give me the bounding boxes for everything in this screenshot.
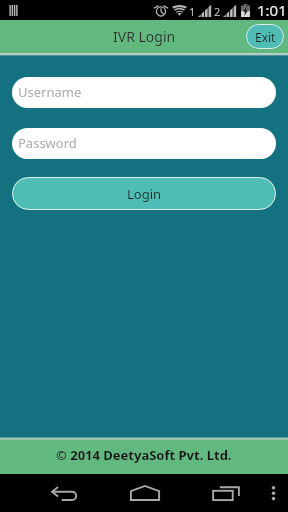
- staticText: Exit: [255, 29, 276, 45]
- staticText: Username: [18, 83, 82, 101]
- staticText: 2: [214, 4, 221, 19]
- button[interactable]: More options: [258, 474, 288, 512]
- staticText: 1: [189, 4, 196, 19]
- button[interactable]: Back: [24, 474, 104, 512]
- staticText: Login: [127, 185, 162, 203]
- button[interactable]: Exit: [246, 24, 284, 49]
- staticText: Password: [18, 134, 77, 152]
- button[interactable]: Username: [12, 77, 276, 108]
- button[interactable]: Password: [12, 128, 276, 159]
- staticText: 1:01: [257, 0, 287, 20]
- button[interactable]: Home: [104, 474, 185, 512]
- staticText: IVR Login: [113, 27, 176, 46]
- button[interactable]: Login: [12, 177, 276, 210]
- staticText: © 2014 DeetyaSoft Pvt. Ltd.: [56, 446, 232, 464]
- button[interactable]: Recent apps: [185, 474, 266, 512]
